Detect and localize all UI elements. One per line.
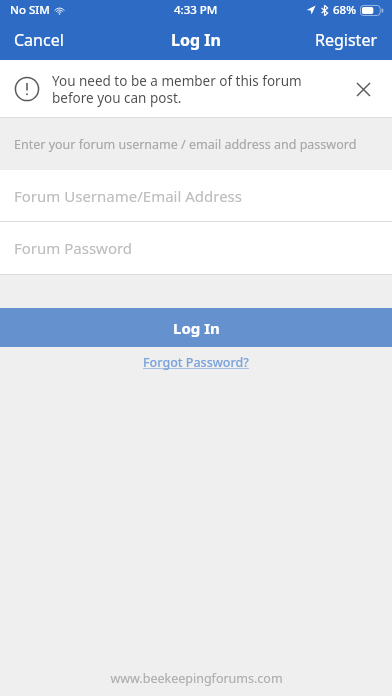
staticText: Forum Username/Email Address bbox=[14, 186, 242, 206]
staticText: Enter your forum username / email addres… bbox=[14, 136, 357, 153]
staticText: Forum Password bbox=[14, 238, 133, 258]
staticText: Forgot Password? bbox=[143, 354, 249, 371]
button[interactable]: Forum Password bbox=[0, 222, 392, 274]
staticText: Log In bbox=[173, 318, 220, 338]
button[interactable]: Cancel bbox=[0, 21, 78, 59]
button[interactable]: Dismiss notice bbox=[348, 74, 378, 104]
staticText: www.beekeepingforums.com bbox=[110, 670, 283, 687]
staticText: Log In bbox=[171, 29, 221, 51]
staticText: 4:33 PM bbox=[174, 2, 218, 18]
staticText: Cancel bbox=[14, 29, 64, 51]
button[interactable]: Register bbox=[301, 21, 392, 59]
staticText: Register bbox=[315, 29, 378, 51]
button[interactable]: Log In bbox=[0, 308, 392, 347]
button[interactable]: Forgot Password? bbox=[137, 351, 255, 374]
staticText: You need to be a member of this forum be… bbox=[52, 72, 340, 107]
staticText: No SIM bbox=[10, 2, 50, 18]
button[interactable]: Forum Username/Email Address bbox=[0, 170, 392, 221]
staticText: 68% bbox=[333, 2, 356, 18]
